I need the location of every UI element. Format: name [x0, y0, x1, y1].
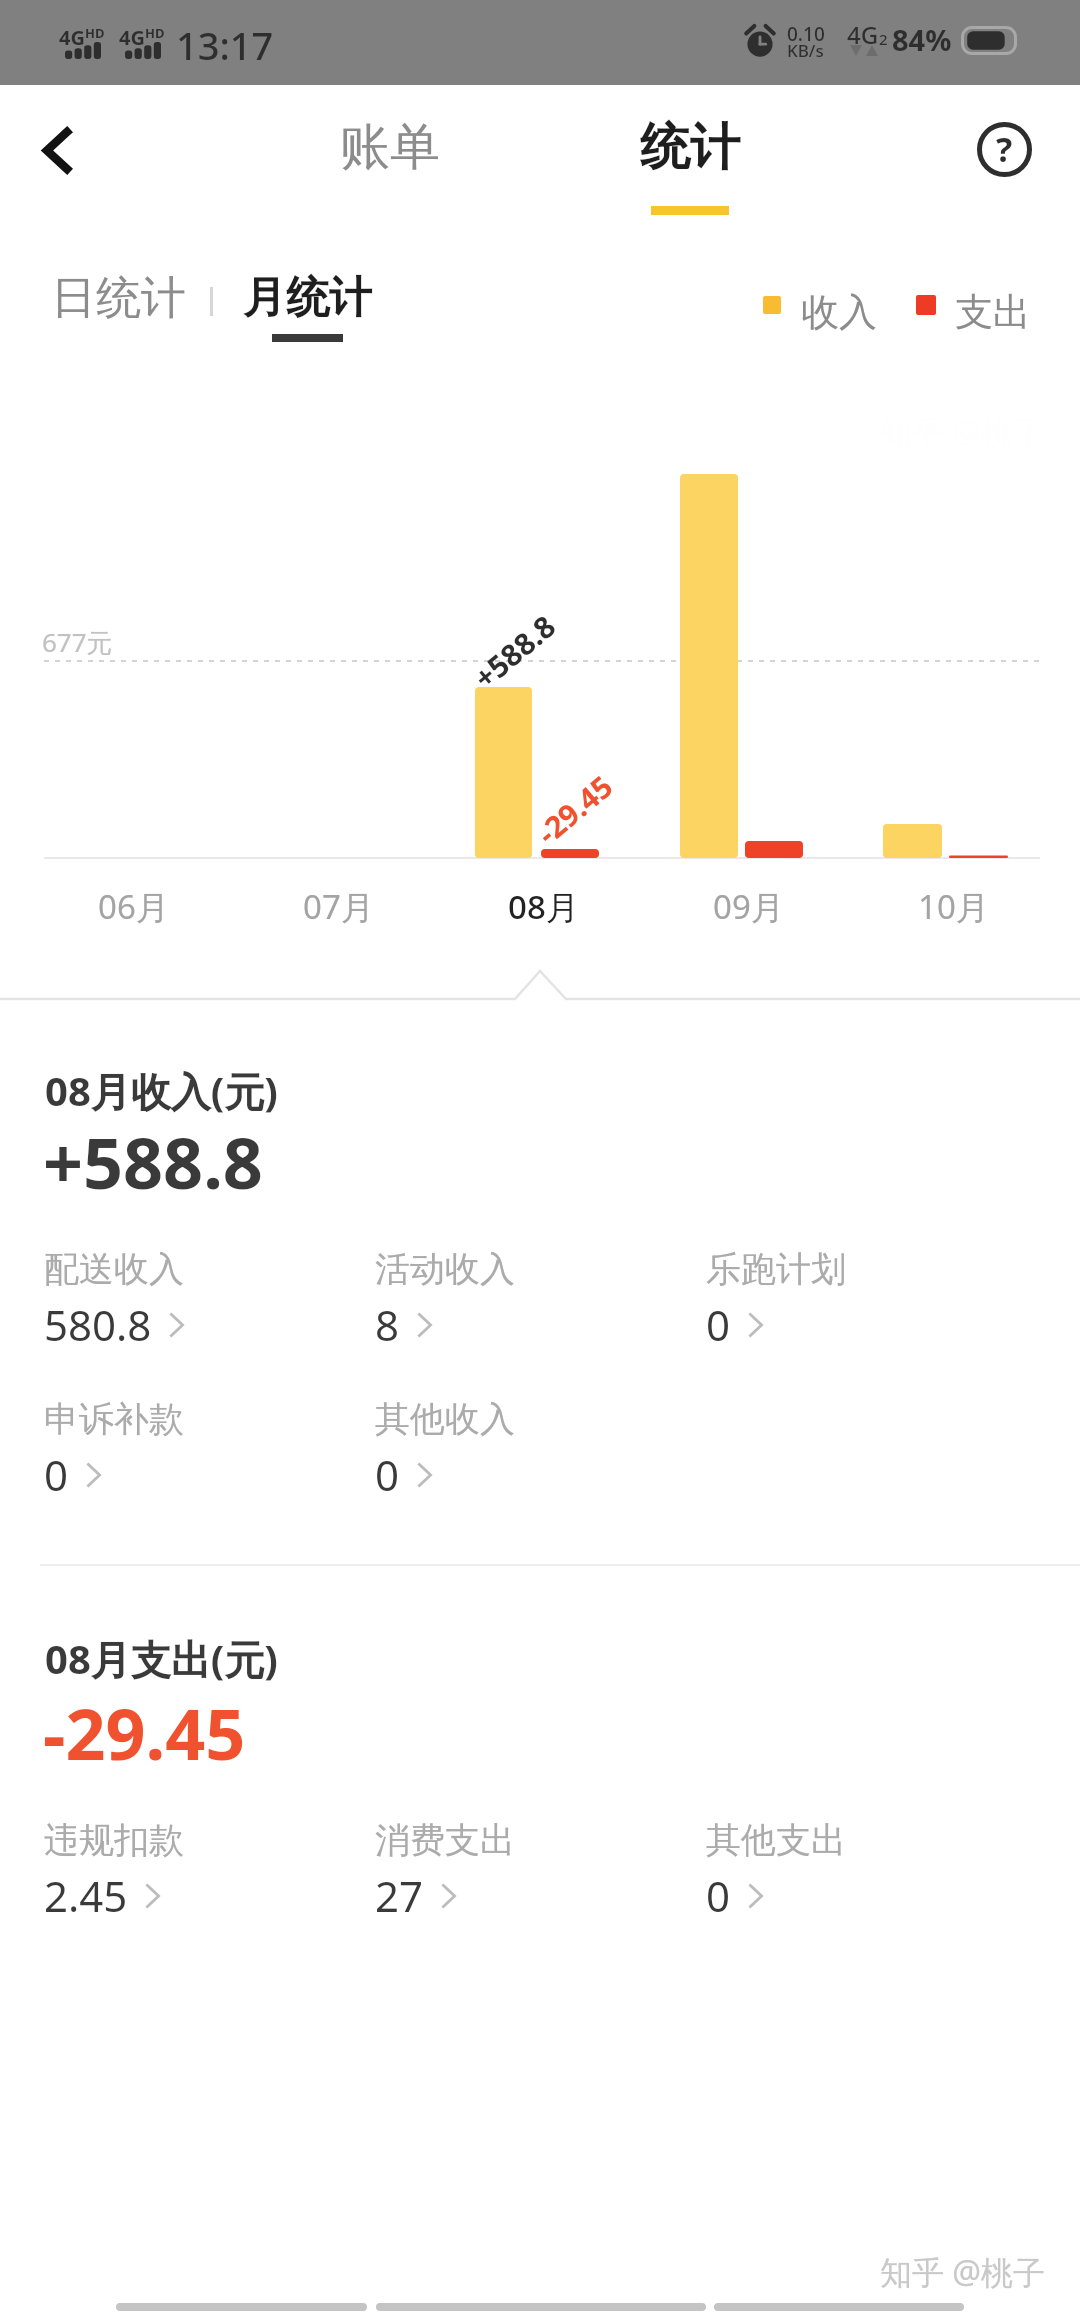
button[interactable]: Back — [18, 112, 96, 189]
staticText: 580.8 — [44, 1296, 152, 1353]
staticText: 07月 — [303, 884, 374, 929]
button[interactable]: 账单 — [320, 98, 460, 197]
staticText: +588.8 — [43, 1114, 263, 1209]
button[interactable]: 活动收入 — [375, 1233, 555, 1363]
staticText: 27 — [375, 1867, 424, 1924]
button[interactable]: 08月 — [493, 876, 593, 936]
staticText: HD — [145, 24, 165, 42]
staticText: 0 — [706, 1867, 731, 1924]
staticText: 4G — [847, 18, 879, 51]
staticText: 申诉补款 — [44, 1397, 184, 1441]
staticText: 84% — [892, 20, 952, 59]
button[interactable]: 07月 — [288, 876, 388, 936]
staticText: -29.45 — [528, 766, 621, 853]
staticText: 08月支出(元) — [45, 1631, 278, 1686]
staticText: ? — [996, 126, 1013, 172]
staticText: KB/s — [787, 39, 824, 62]
button[interactable]: 09月 — [698, 876, 798, 936]
button[interactable]: 月统计 — [229, 257, 386, 342]
staticText: 0.10 — [787, 21, 825, 47]
staticText: 8 — [375, 1296, 400, 1353]
staticText: 统计 — [640, 116, 740, 179]
staticText: 0 — [375, 1446, 400, 1503]
staticText: 配送收入 — [44, 1247, 184, 1291]
staticText: 2 — [879, 29, 888, 49]
staticText: 0 — [44, 1446, 69, 1503]
staticText: 其他收入 — [375, 1397, 515, 1441]
button[interactable]: 配送收入 — [44, 1233, 224, 1363]
staticText: -29.45 — [43, 1685, 246, 1780]
staticText: 06月 — [98, 884, 169, 929]
staticText: 08月收入(元) — [45, 1063, 278, 1118]
staticText: +588.8 — [465, 605, 564, 698]
button[interactable]: Help — [966, 111, 1043, 188]
staticText: 09月 — [713, 884, 784, 929]
staticText: 消费支出 — [375, 1818, 515, 1862]
button[interactable]: 申诉补款 — [44, 1383, 224, 1513]
button[interactable]: 消费支出 — [375, 1804, 555, 1934]
button[interactable]: 日统计 — [37, 256, 200, 341]
staticText: HD — [85, 24, 105, 42]
staticText: 677元 — [42, 624, 113, 660]
staticText: 违规扣款 — [44, 1818, 184, 1862]
button[interactable]: 违规扣款 — [44, 1804, 224, 1934]
staticText: 月统计 — [243, 271, 372, 325]
button[interactable]: 10月 — [903, 876, 1003, 936]
button[interactable]: 统计 — [620, 98, 760, 215]
staticText: 13:17 — [176, 19, 274, 71]
staticText: 支出 — [955, 288, 1031, 336]
staticText: 乐跑计划 — [706, 1247, 846, 1291]
staticText: 10月 — [918, 884, 989, 929]
staticText: 日统计 — [51, 270, 186, 327]
button[interactable]: 乐跑计划 — [706, 1233, 886, 1363]
staticText: 其他支出 — [706, 1818, 846, 1862]
staticText: 0 — [706, 1296, 731, 1353]
staticText: 收入 — [801, 288, 877, 336]
staticText: 账单 — [340, 116, 440, 179]
staticText: 08月 — [508, 884, 579, 929]
staticText: 知乎 @桃子 — [880, 2250, 1046, 2294]
button[interactable]: 06月 — [83, 876, 183, 936]
staticText: 活动收入 — [375, 1247, 515, 1291]
button[interactable]: 其他支出 — [706, 1804, 886, 1934]
staticText: 4G — [59, 24, 85, 51]
staticText: 4G — [119, 24, 145, 51]
staticText: 2.45 — [44, 1867, 128, 1924]
button[interactable]: 其他收入 — [375, 1383, 555, 1513]
